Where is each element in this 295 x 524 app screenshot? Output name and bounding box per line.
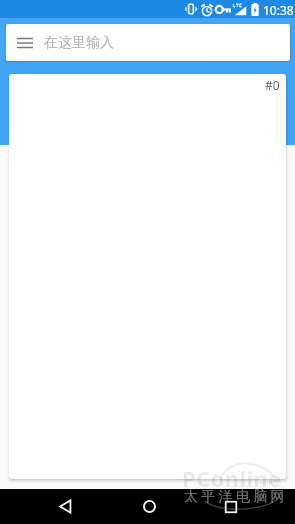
staticText: 10:38: [263, 2, 294, 18]
staticText: 太平洋电脑网: [184, 488, 288, 506]
staticText: .com.cn: [258, 478, 282, 486]
button[interactable]: Back: [46, 489, 84, 524]
button[interactable]: Menu: [6, 24, 44, 61]
button[interactable]: Recents: [212, 489, 250, 524]
button[interactable]: Home: [130, 489, 168, 524]
staticText: #0: [265, 77, 280, 93]
staticText: PConline: [182, 463, 282, 493]
button[interactable]: Menu: [6, 24, 290, 61]
staticText: 在这里输入: [44, 34, 114, 52]
